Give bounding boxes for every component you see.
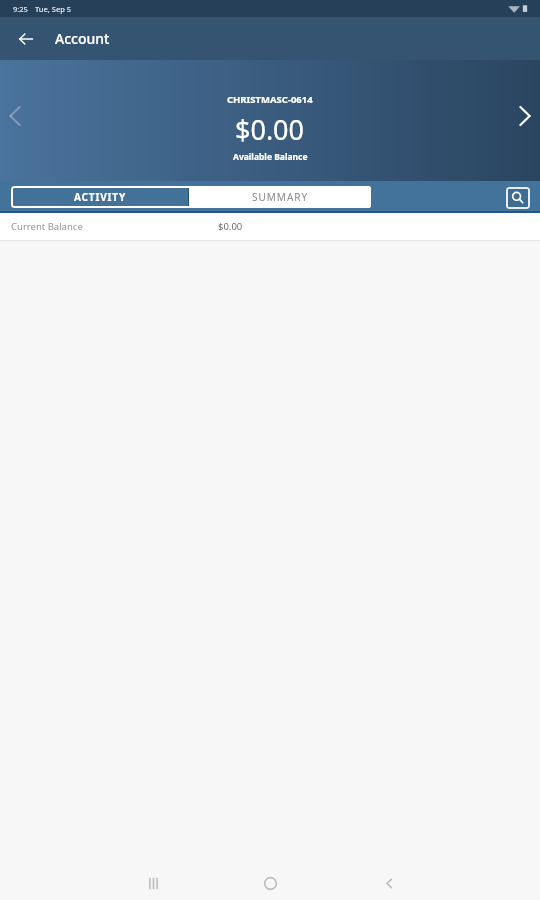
staticText: 9:25 — [13, 4, 28, 14]
button[interactable]: Home — [243, 867, 297, 900]
button[interactable]: Back — [361, 867, 415, 900]
staticText: Tue, Sep 5 — [35, 4, 72, 14]
button[interactable]: Back — [10, 23, 42, 55]
staticText: $0.00 — [218, 220, 243, 233]
button[interactable]: Previous account — [0, 99, 32, 133]
staticText: ACTIVITY — [74, 190, 127, 204]
staticText: $0.00 — [235, 111, 305, 148]
button[interactable]: Current Balance — [0, 213, 540, 240]
staticText: SUMMARY — [252, 190, 309, 204]
button[interactable]: SUMMARY — [189, 186, 371, 208]
staticText: Current Balance — [11, 220, 83, 233]
button[interactable]: Recents — [126, 867, 180, 900]
button[interactable]: Search — [506, 187, 530, 209]
staticText: Available Balance — [233, 151, 308, 163]
button[interactable]: Next account — [508, 99, 540, 133]
button[interactable]: ACTIVITY — [11, 186, 189, 208]
staticText: Account — [55, 29, 110, 48]
staticText: CHRISTMASC-0614 — [227, 93, 313, 106]
